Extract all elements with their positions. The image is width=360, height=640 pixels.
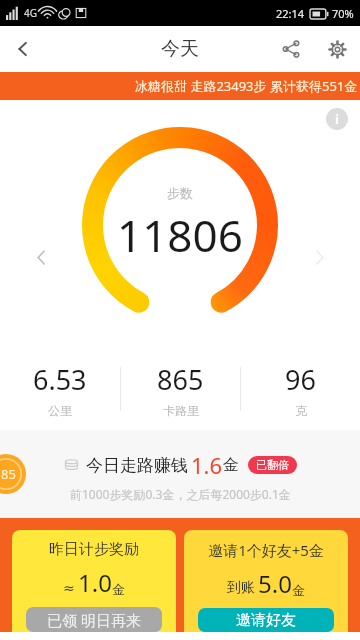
staticText: 4G [24, 6, 37, 20]
button[interactable]: 邀请好友 [198, 608, 334, 632]
staticText: 6.53 [33, 361, 87, 398]
staticText: ≈ [63, 580, 75, 596]
button[interactable]: 昨日计步奖励 [12, 530, 176, 632]
button[interactable]: 6.53 [0, 356, 120, 422]
staticText: 已领 明日再来 [47, 610, 141, 630]
button[interactable]: Next day [306, 244, 332, 270]
staticText: 金 [112, 581, 125, 597]
button[interactable]: 已翻倍 [256, 458, 289, 472]
staticText: 已翻倍 [256, 458, 289, 472]
staticText: 22:14 [276, 6, 305, 21]
button[interactable]: Settings [314, 26, 360, 72]
staticText: 5.0 [258, 567, 292, 600]
staticText: 昨日计步奖励 [49, 540, 139, 559]
staticText: 金 [292, 582, 305, 598]
staticText: 步数 [167, 185, 193, 201]
staticText: 克 [295, 403, 307, 418]
staticText: 96 [285, 361, 316, 398]
staticText: 卡路里 [163, 403, 199, 418]
button[interactable]: 96 [241, 356, 360, 422]
staticText: 公里 [48, 403, 72, 418]
staticText: 85 [1, 465, 16, 483]
staticText: 11806 [117, 205, 243, 265]
button[interactable]: 步数 [80, 125, 280, 325]
button[interactable]: 冰糖很甜 走路23493步 累计获得551金 [0, 72, 360, 100]
staticText: 70% [332, 6, 354, 21]
staticText: 金 [223, 455, 239, 475]
staticText: 1.0 [78, 566, 112, 599]
staticText: 865 [157, 361, 204, 398]
button[interactable]: 865 [121, 356, 240, 422]
staticText: 前1000步奖励0.3金，之后每2000步0.1金 [70, 486, 291, 502]
staticText: i [335, 110, 339, 128]
staticText: 冰糖很甜 走路23493步 累计获得551金 [135, 77, 358, 95]
staticText: 今天 [161, 37, 199, 61]
button[interactable]: Info [326, 108, 348, 130]
button[interactable]: 已领 明日再来 [26, 607, 162, 632]
staticText: 今日走路赚钱 [86, 455, 188, 476]
button[interactable]: Back [0, 26, 46, 72]
button[interactable]: 邀请1个好友+5金 [184, 530, 348, 632]
staticText: 邀请1个好友+5金 [208, 540, 324, 560]
button[interactable]: Previous day [28, 244, 54, 270]
staticText: 1.6 [191, 450, 223, 480]
staticText: 到账 [227, 579, 255, 597]
staticText: 邀请好友 [236, 611, 296, 630]
button[interactable]: 85 [0, 430, 360, 518]
button[interactable]: Share [268, 26, 314, 72]
